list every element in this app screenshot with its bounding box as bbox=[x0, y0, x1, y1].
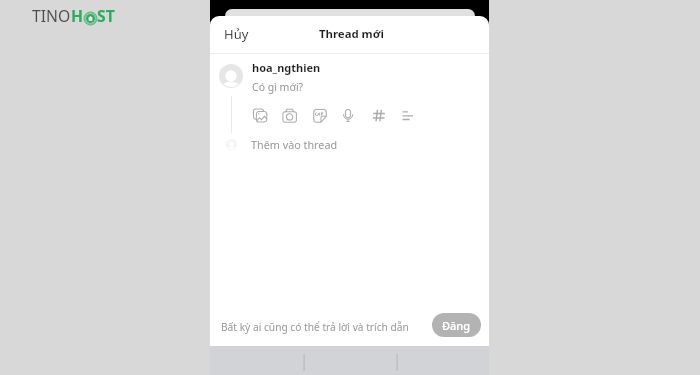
button[interactable]: Bất kỳ ai cũng có thể trả lời và trích d… bbox=[221, 320, 409, 334]
staticText: hoa_ngthien bbox=[252, 60, 321, 75]
button[interactable]: GIF bbox=[312, 108, 328, 124]
staticText: Đăng bbox=[442, 318, 471, 333]
staticText: Có gì mới? bbox=[252, 80, 304, 94]
button[interactable]: Camera bbox=[282, 108, 298, 124]
button[interactable]: Voice bbox=[340, 108, 356, 124]
staticText: ST bbox=[97, 5, 115, 26]
staticText: Thread mới bbox=[319, 26, 384, 42]
staticText: Thêm vào thread bbox=[251, 137, 338, 152]
button[interactable]: Thêm vào thread bbox=[210, 134, 489, 154]
button[interactable]: Hashtag bbox=[371, 108, 387, 124]
button[interactable]: Hủy bbox=[219, 22, 254, 46]
staticText: TINO bbox=[32, 5, 71, 26]
button[interactable]: Add photo bbox=[252, 108, 268, 124]
button[interactable]: Đăng bbox=[432, 313, 481, 337]
staticText: Hủy bbox=[224, 25, 249, 43]
staticText: H bbox=[71, 5, 84, 26]
button[interactable]: Poll bbox=[397, 108, 413, 124]
